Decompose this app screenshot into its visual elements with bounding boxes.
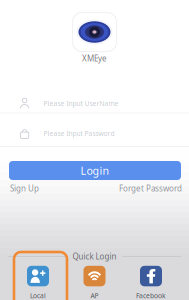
staticText: Sign Up (10, 183, 39, 194)
button[interactable]: Please Input Password (0, 113, 189, 147)
staticText: Please Input UserName (43, 99, 118, 108)
button[interactable]: Login (9, 161, 181, 180)
button[interactable]: Sign Up (10, 183, 39, 194)
staticText: Forget Password (119, 183, 182, 194)
button[interactable]: Facebook (125, 266, 177, 300)
button[interactable]: Forget Password (119, 183, 182, 194)
staticText: Quick Login (72, 251, 116, 262)
button[interactable]: Please Input UserName (0, 88, 189, 113)
staticText: AP (90, 291, 98, 300)
staticText: Facebook (136, 291, 166, 300)
staticText: XMEye (82, 53, 107, 64)
button[interactable]: AP (68, 266, 120, 300)
button[interactable]: Local (12, 266, 64, 300)
staticText: Local (30, 291, 46, 300)
staticText: Login (80, 163, 109, 178)
staticText: Please Input Password (43, 129, 114, 138)
